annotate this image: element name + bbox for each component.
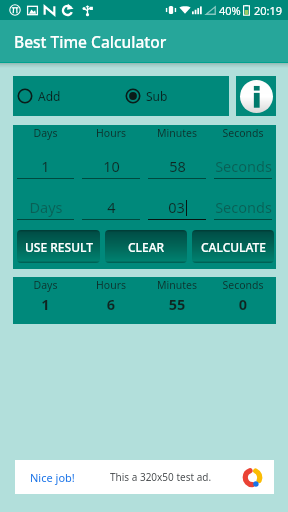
staticText: CLEAR [128,239,165,255]
staticText: CALCULATE [201,239,266,255]
button[interactable]: 1 [17,141,74,179]
button[interactable]: Days [17,179,74,220]
staticText: Sub [146,88,168,104]
staticText: Best Time Calculator [14,31,167,52]
staticText: Hours [78,278,144,292]
button[interactable]: Seconds [214,141,272,179]
staticText: 20:19 [254,3,283,18]
staticText: Minutes [144,278,210,292]
staticText: Seconds [215,197,272,217]
staticText: 58 [169,156,186,176]
button[interactable]: Info [236,76,276,116]
staticText: 0 [210,294,276,314]
button[interactable]: Seconds [214,179,272,220]
staticText: 03 [168,197,185,217]
staticText: Days [29,197,63,217]
button[interactable]: 4 [82,179,140,220]
staticText: 1 [41,156,50,176]
staticText: USE RESULT [25,239,93,255]
staticText: 6 [78,294,144,314]
button[interactable]: Add [13,76,121,116]
staticText: 10 [103,156,120,176]
button[interactable]: 03 [148,179,206,220]
staticText: Seconds [210,278,276,292]
staticText: Nice job! [30,470,75,485]
button[interactable]: USE RESULT [17,230,100,263]
button[interactable]: Nice job! [15,460,274,494]
button[interactable]: Sub [121,76,229,116]
staticText: 40% [219,3,241,18]
staticText: 4 [107,197,116,217]
staticText: Add [38,88,61,104]
button[interactable]: CLEAR [105,230,187,263]
button[interactable]: 58 [148,141,206,179]
staticText: Minutes [144,126,210,140]
staticText: Days [13,278,78,292]
staticText: Seconds [210,126,276,140]
staticText: Seconds [215,156,272,176]
button[interactable]: 10 [82,141,140,179]
staticText: 55 [144,294,210,314]
staticText: 1 [13,294,78,314]
button[interactable]: CALCULATE [192,230,274,263]
staticText: This a 320x50 test ad. [110,470,212,484]
staticText: Days [13,126,78,140]
staticText: Hours [78,126,144,140]
